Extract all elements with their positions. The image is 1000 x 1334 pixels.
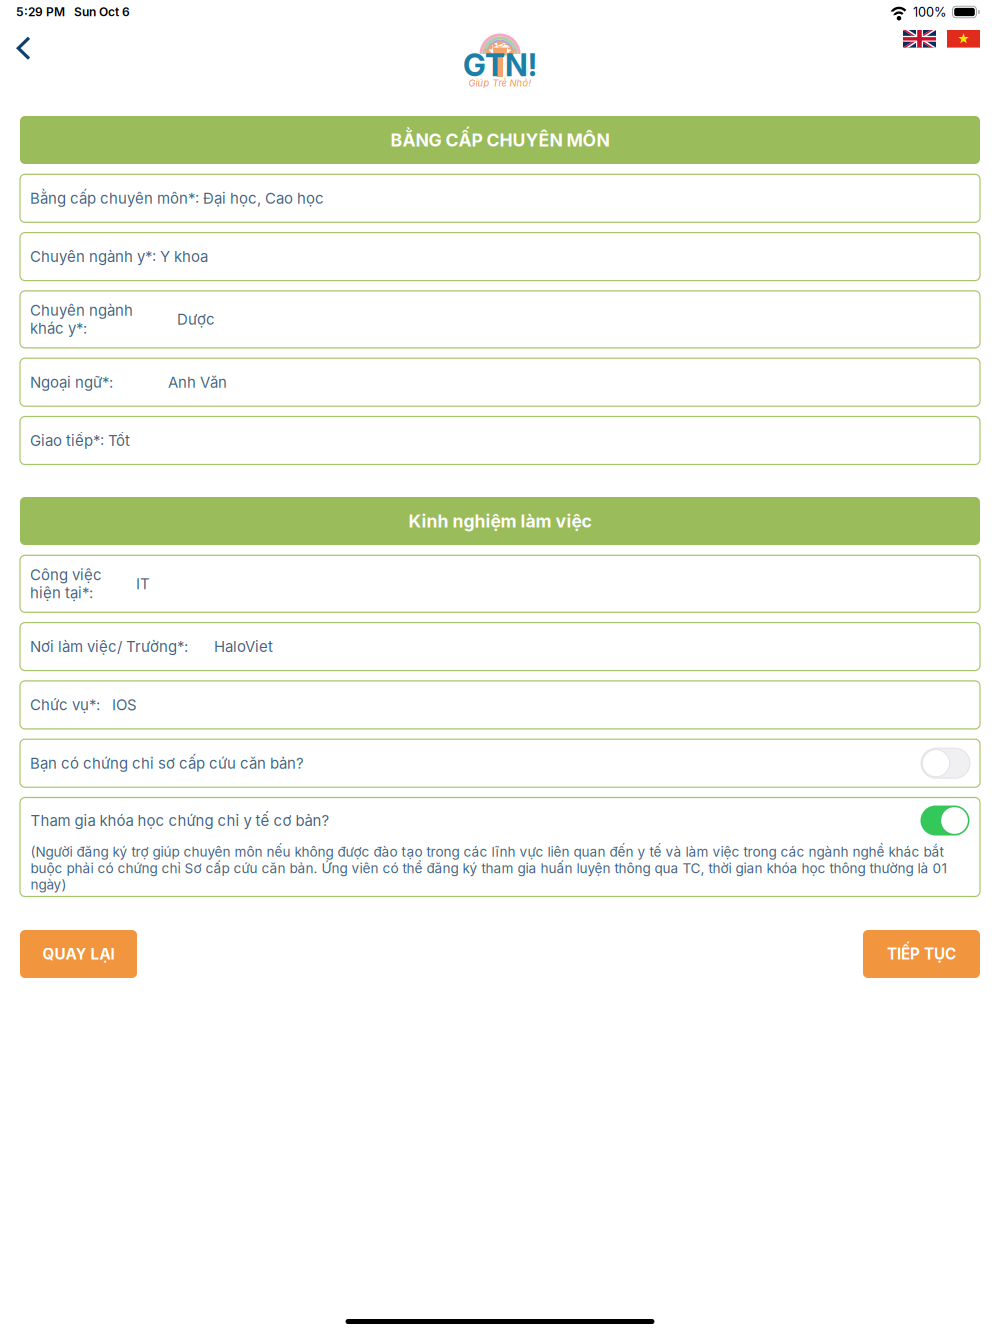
staticText: IT xyxy=(136,575,150,593)
staticText: Giúp Trẻ Nhỏ! xyxy=(468,77,531,89)
staticText: Công việc hiện tại*: xyxy=(30,566,102,602)
staticText: Kinh nghiệm làm việc xyxy=(408,510,591,532)
staticText: Giao tiếp*: Tốt xyxy=(30,431,130,450)
staticText: TIẾP TỤC xyxy=(887,945,956,963)
staticText: Chuyên ngành khác y*: xyxy=(30,301,133,337)
button[interactable]: Bạn có chứng chỉ sơ cấp cứu căn bản? xyxy=(20,739,980,787)
button[interactable]: English xyxy=(903,30,936,48)
staticText: BẰNG CẤP CHUYÊN MÔN xyxy=(390,129,609,151)
staticText: HaloViet xyxy=(214,638,273,656)
staticText: Sun Oct 6 xyxy=(74,5,130,19)
staticText: Chuyên ngành y*: Y khoa xyxy=(30,248,208,266)
button[interactable]: QUAY LẠI xyxy=(20,930,137,978)
staticText: (Người đăng ký trợ giúp chuyên môn nếu k… xyxy=(30,843,947,893)
staticText: Bạn có chứng chỉ sơ cấp cứu căn bản? xyxy=(30,754,304,772)
staticText: GTN! xyxy=(463,46,537,83)
staticText: Tham gia khóa học chứng chỉ y tế cơ bản? xyxy=(30,811,329,830)
staticText: Dược xyxy=(177,310,215,328)
staticText: 100% xyxy=(913,4,947,20)
button[interactable]: Tiếng Việt xyxy=(947,30,980,48)
staticText: IOS xyxy=(112,696,137,714)
staticText: 5:29 PM xyxy=(16,5,65,19)
button[interactable]: TIẾP TỤC xyxy=(863,930,980,978)
staticText: Nơi làm việc/ Trường*: xyxy=(30,638,188,656)
button[interactable]: Back xyxy=(16,26,60,70)
staticText: Anh Văn xyxy=(168,373,227,391)
staticText: Bằng cấp chuyên môn*: Đại học, Cao học xyxy=(30,189,324,207)
staticText: QUAY LẠI xyxy=(42,945,114,963)
staticText: Chức vụ*: xyxy=(30,696,100,714)
staticText: Ngoại ngữ*: xyxy=(30,373,113,391)
